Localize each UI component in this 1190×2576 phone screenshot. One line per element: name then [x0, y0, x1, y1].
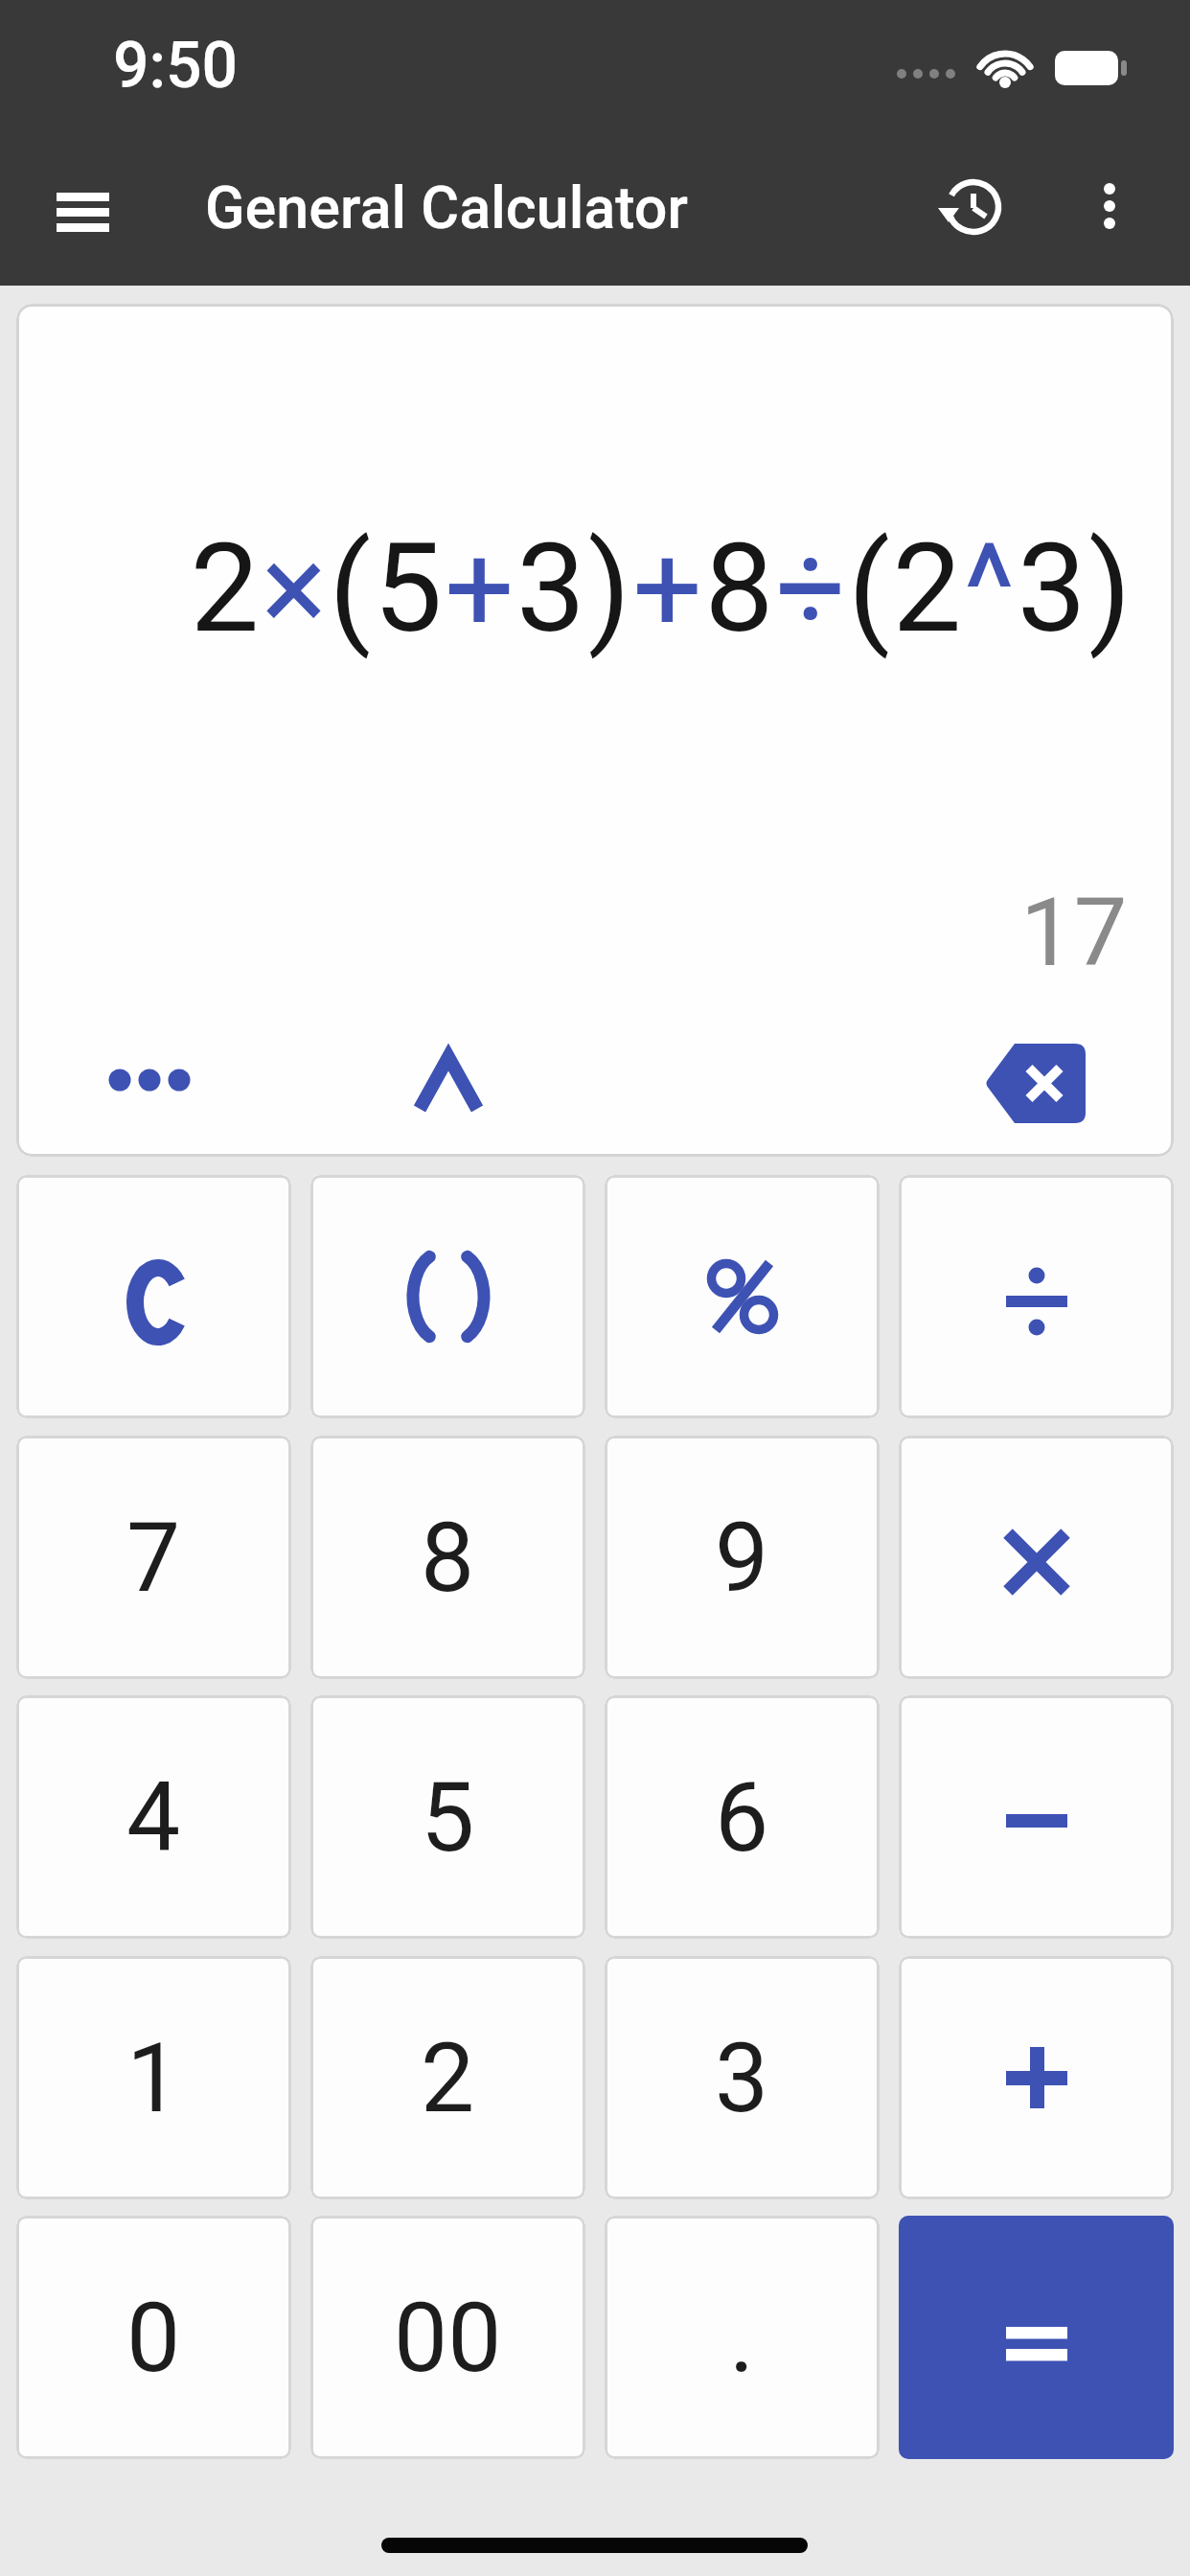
button[interactable]: .: [605, 2216, 880, 2459]
button[interactable]: 3: [605, 1956, 880, 2199]
button[interactable]: [899, 1695, 1174, 1939]
button[interactable]: 2: [310, 1956, 585, 2199]
button[interactable]: [16, 1175, 291, 1418]
button[interactable]: [899, 2216, 1174, 2459]
button[interactable]: 6: [605, 1695, 880, 1939]
button[interactable]: [310, 1175, 585, 1418]
staticText: 17: [1020, 877, 1128, 988]
button[interactable]: 8: [310, 1436, 585, 1679]
button[interactable]: [899, 1956, 1174, 2199]
button[interactable]: [57, 1023, 242, 1138]
button[interactable]: [605, 1175, 880, 1418]
staticText: 6: [715, 1761, 769, 1874]
staticText: 9: [715, 1502, 769, 1614]
button[interactable]: [34, 169, 130, 255]
button[interactable]: 9: [605, 1436, 880, 1679]
button[interactable]: [966, 1024, 1105, 1142]
staticText: 9:50: [113, 29, 239, 103]
staticText: 2×(5+3)+8÷(2^3): [190, 517, 1133, 660]
staticText: General Calculator: [205, 173, 688, 241]
staticText: 8: [421, 1502, 475, 1614]
staticText: 2: [421, 2022, 475, 2134]
staticText: 0: [126, 2282, 181, 2394]
staticText: 7: [126, 1502, 181, 1614]
button[interactable]: [918, 154, 1021, 258]
button[interactable]: [899, 1436, 1174, 1679]
button[interactable]: 0: [16, 2216, 291, 2459]
button[interactable]: [899, 1175, 1174, 1418]
button[interactable]: 4: [16, 1695, 291, 1939]
button[interactable]: 7: [16, 1436, 291, 1679]
button[interactable]: 1: [16, 1956, 291, 2199]
staticText: 1: [126, 2022, 181, 2134]
button[interactable]: 5: [310, 1695, 585, 1939]
staticText: 3: [715, 2022, 769, 2134]
button[interactable]: [381, 1025, 515, 1140]
staticText: 5: [421, 1761, 475, 1874]
staticText: .: [729, 2282, 755, 2394]
button[interactable]: [1069, 154, 1150, 258]
staticText: 4: [126, 1761, 181, 1874]
button[interactable]: 00: [310, 2216, 585, 2459]
staticText: 00: [394, 2282, 502, 2394]
